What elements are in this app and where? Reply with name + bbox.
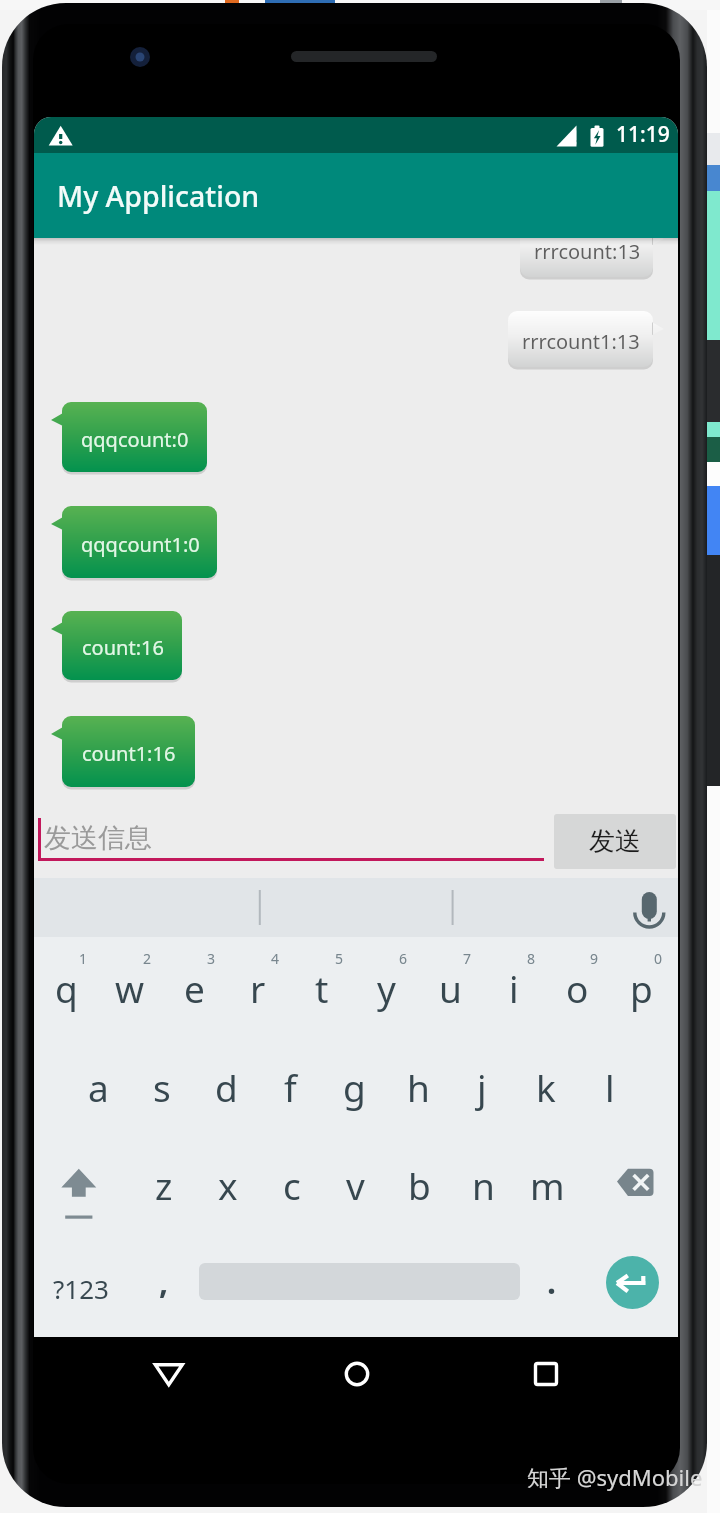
staticText: 8 [527, 949, 536, 968]
button[interactable]: w [98, 954, 162, 1022]
staticText: z [155, 1160, 173, 1210]
button[interactable]: Shift [34, 1137, 132, 1237]
staticText: k [536, 1062, 556, 1112]
button[interactable]: count:16 [51, 611, 182, 680]
staticText: 发送 [589, 825, 641, 858]
button[interactable]: Home [337, 1337, 377, 1411]
staticText: w [115, 963, 145, 1013]
staticText: . [547, 1260, 556, 1304]
button[interactable]: h [386, 1053, 450, 1121]
staticText: count:16 [82, 634, 164, 661]
button[interactable]: . [521, 1249, 581, 1329]
staticText: qqqcount:0 [81, 426, 189, 453]
button[interactable]: o [545, 954, 609, 1022]
staticText: rrrcount1:13 [522, 328, 640, 355]
button[interactable]: Enter [606, 1256, 659, 1309]
staticText: a [88, 1062, 109, 1112]
button[interactable]: Back [149, 1337, 189, 1411]
button[interactable]: n [451, 1151, 515, 1219]
button[interactable]: qqqcount:0 [51, 402, 207, 472]
button[interactable]: rrrcount1:13 [508, 311, 664, 367]
staticText: 1 [79, 949, 88, 968]
button[interactable]: d [194, 1053, 258, 1121]
staticText: 6 [399, 949, 408, 968]
button[interactable]: b [387, 1151, 451, 1219]
staticText: 0 [654, 949, 663, 968]
staticText: s [153, 1062, 171, 1112]
staticText: d [215, 1062, 238, 1112]
button[interactable]: Backspace [580, 1137, 678, 1237]
staticText: j [477, 1062, 487, 1112]
button[interactable]: l [578, 1053, 642, 1121]
staticText: 7 [463, 949, 472, 968]
staticText: t [315, 963, 329, 1013]
button[interactable]: e [162, 954, 226, 1022]
staticText: rrrcount:13 [534, 238, 641, 265]
button[interactable]: count1:16 [51, 716, 195, 787]
button[interactable]: , [134, 1249, 194, 1329]
staticText: qqqcount1:0 [81, 531, 200, 558]
button[interactable]: z [132, 1151, 196, 1219]
staticText: n [472, 1160, 495, 1210]
staticText: y [377, 963, 396, 1013]
button[interactable]: 发送 [554, 814, 676, 869]
button[interactable]: g [322, 1053, 386, 1121]
button[interactable]: p [609, 954, 673, 1022]
staticText: 2 [143, 949, 152, 968]
staticText: e [184, 963, 205, 1013]
staticText: count1:16 [82, 740, 176, 767]
button[interactable]: i [482, 954, 546, 1022]
button[interactable]: k [514, 1053, 578, 1121]
button[interactable]: a [66, 1053, 130, 1121]
staticText: r [250, 963, 266, 1013]
staticText: x [218, 1160, 238, 1210]
button[interactable]: 发送信息 [38, 814, 544, 861]
staticText: h [407, 1062, 430, 1112]
button[interactable]: c [260, 1151, 324, 1219]
button[interactable]: ?123 [34, 1249, 132, 1329]
staticText: 发送信息 [44, 821, 152, 855]
button[interactable]: j [450, 1053, 514, 1121]
button[interactable]: t [290, 954, 354, 1022]
staticText: 9 [590, 949, 599, 968]
button[interactable]: y [354, 954, 418, 1022]
staticText: o [566, 963, 589, 1013]
button[interactable]: Voice input [629, 878, 671, 937]
button[interactable]: f [258, 1053, 322, 1121]
staticText: 3 [207, 949, 216, 968]
staticText: My Application [57, 177, 260, 216]
staticText: f [284, 1062, 297, 1112]
button[interactable]: r [226, 954, 290, 1022]
staticText: b [408, 1160, 431, 1210]
staticText: p [630, 963, 653, 1013]
staticText: i [509, 963, 519, 1013]
button[interactable]: qqqcount1:0 [51, 506, 217, 578]
staticText: q [55, 963, 78, 1013]
staticText: 知乎 @sydMobile [527, 1462, 703, 1492]
staticText: u [439, 963, 462, 1013]
button[interactable]: u [418, 954, 482, 1022]
staticText: , [159, 1260, 169, 1304]
staticText: 5 [335, 949, 344, 968]
button[interactable]: m [515, 1151, 579, 1219]
staticText: g [343, 1062, 366, 1112]
staticText: v [346, 1160, 365, 1210]
button[interactable]: Recents [525, 1337, 565, 1411]
staticText: l [605, 1062, 615, 1112]
button[interactable]: x [196, 1151, 260, 1219]
button[interactable]: v [323, 1151, 387, 1219]
staticText: m [530, 1160, 565, 1210]
staticText: 11:19 [616, 120, 670, 149]
staticText: c [283, 1160, 301, 1210]
staticText: ?123 [53, 1271, 109, 1306]
button[interactable]: q [34, 954, 98, 1022]
button[interactable]: s [130, 1053, 194, 1121]
button[interactable]: rrrcount:13 [520, 238, 664, 277]
staticText: 4 [271, 949, 280, 968]
